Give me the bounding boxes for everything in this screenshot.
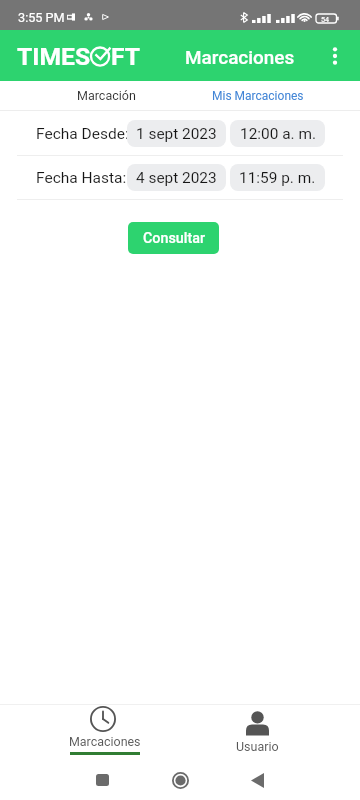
staticText: 11:59 p. m. <box>239 169 316 187</box>
button[interactable]: Usuario <box>193 705 321 760</box>
staticText: FT <box>111 42 141 71</box>
staticText: 1 sept 2023 <box>136 125 217 143</box>
button[interactable]: 4 sept 2023 <box>127 164 226 191</box>
staticText: Fecha Hasta: <box>36 169 127 187</box>
staticText: 54 <box>321 15 330 23</box>
staticText: Fecha Desde: <box>36 125 129 143</box>
staticText: Marcación <box>77 88 136 103</box>
button[interactable]: Recents <box>82 760 122 800</box>
staticText: Mis Marcaciones <box>212 89 304 103</box>
staticText: 4 sept 2023 <box>136 169 217 187</box>
button[interactable]: Consultar <box>128 222 219 254</box>
button[interactable]: Back <box>237 760 277 800</box>
staticText: Consultar <box>143 230 205 247</box>
button[interactable]: Marcación <box>41 81 171 110</box>
button[interactable]: 11:59 p. m. <box>230 164 325 191</box>
staticText: Marcaciones <box>185 46 295 68</box>
button[interactable]: More options <box>320 30 350 81</box>
staticText: Usuario <box>236 739 279 754</box>
button[interactable]: 1 sept 2023 <box>127 120 226 147</box>
staticText: 12:00 a. m. <box>240 125 316 143</box>
button[interactable]: Home <box>160 760 200 800</box>
button[interactable]: Marcaciones <box>39 705 167 760</box>
staticText: TIMES <box>17 42 91 71</box>
staticText: 3:55 PM <box>18 10 65 25</box>
staticText: Marcaciones <box>69 734 141 749</box>
button[interactable]: Mis Marcaciones <box>193 81 323 110</box>
button[interactable]: 12:00 a. m. <box>230 120 325 147</box>
